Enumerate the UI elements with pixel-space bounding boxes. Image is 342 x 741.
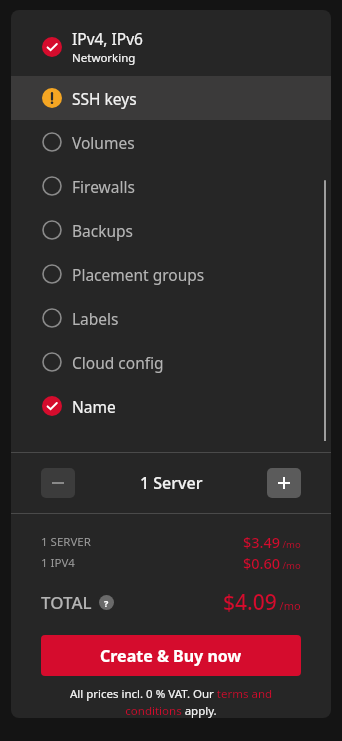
staticText: Placement groups (72, 264, 205, 285)
staticText: $3.49 /mo (243, 532, 301, 551)
staticText: 1 Server (140, 472, 203, 494)
staticText: TOTAL (41, 591, 92, 614)
button[interactable]: Firewalls (11, 164, 331, 208)
button[interactable]: Placement groups (11, 252, 331, 296)
button[interactable]: Total info (99, 595, 114, 610)
button[interactable]: Labels (11, 296, 331, 340)
button[interactable]: Increase server count (267, 468, 301, 498)
button[interactable]: SSH keys (11, 76, 331, 120)
button[interactable]: Cloud config (11, 340, 331, 384)
staticText: Create & Buy now (100, 645, 242, 667)
button[interactable]: IPv4, IPv6 (11, 18, 331, 76)
staticText: IPv4, IPv6 (72, 28, 143, 49)
staticText: Name (72, 396, 116, 417)
staticText: Firewalls (72, 176, 135, 197)
staticText: 1 IPV4 (41, 555, 75, 571)
staticText: SSH keys (72, 88, 137, 109)
staticText: Cloud config (72, 352, 164, 373)
staticText: Networking (72, 50, 136, 66)
staticText: $4.09 /mo (223, 588, 301, 617)
button[interactable]: Create & Buy now (41, 635, 301, 676)
staticText: Backups (72, 220, 134, 241)
button[interactable]: Name (11, 384, 331, 428)
button[interactable]: Backups (11, 208, 331, 252)
staticText: $0.60 /mo (243, 553, 301, 572)
staticText: 1 SERVER (41, 534, 91, 550)
staticText: ? (104, 597, 109, 609)
staticText: Labels (72, 308, 119, 329)
staticText: Volumes (72, 132, 135, 153)
button[interactable]: Decrease server count (41, 468, 75, 498)
button[interactable]: Volumes (11, 120, 331, 164)
staticText: All prices incl. 0 % VAT. Our terms and … (41, 686, 301, 718)
